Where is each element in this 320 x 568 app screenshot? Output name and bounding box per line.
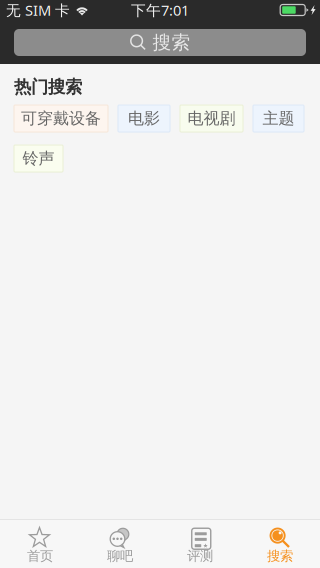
staticText: 无 SIM 卡: [6, 0, 70, 20]
button[interactable]: 搜索: [14, 29, 306, 56]
button[interactable]: 评测: [160, 519, 240, 568]
staticText: 可穿戴设备: [21, 109, 101, 128]
button[interactable]: 首页: [0, 519, 80, 568]
button[interactable]: 聊吧: [80, 519, 160, 568]
staticText: 电影: [128, 109, 160, 128]
staticText: 电视剧: [187, 109, 235, 128]
staticText: 铃声: [22, 149, 54, 168]
staticText: 评测: [187, 548, 213, 564]
button[interactable]: 电视剧: [180, 105, 243, 132]
staticText: 下午7:01: [131, 0, 189, 20]
staticText: 热门搜索: [14, 76, 82, 98]
button[interactable]: 电影: [118, 105, 170, 132]
staticText: 搜索: [267, 548, 293, 564]
staticText: 聊吧: [107, 548, 133, 564]
staticText: 主题: [262, 109, 294, 128]
button[interactable]: 可穿戴设备: [14, 105, 108, 132]
staticText: 首页: [27, 548, 53, 564]
staticText: 搜索: [152, 31, 190, 54]
button[interactable]: 铃声: [14, 145, 63, 172]
button[interactable]: 主题: [253, 105, 304, 132]
button[interactable]: 搜索: [240, 519, 320, 568]
